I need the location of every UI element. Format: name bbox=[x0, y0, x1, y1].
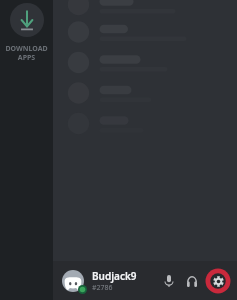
staticText: #2786 bbox=[92, 283, 113, 293]
button[interactable]: Settings bbox=[205, 268, 231, 294]
button[interactable]: Profile bbox=[62, 270, 84, 292]
button[interactable]: Mute microphone bbox=[159, 271, 179, 291]
staticText: DOWNLOAD APPS bbox=[5, 44, 48, 62]
staticText: Budjack9 bbox=[92, 269, 137, 283]
button[interactable]: Download Apps bbox=[10, 3, 44, 37]
button[interactable]: Deafen bbox=[182, 271, 202, 291]
